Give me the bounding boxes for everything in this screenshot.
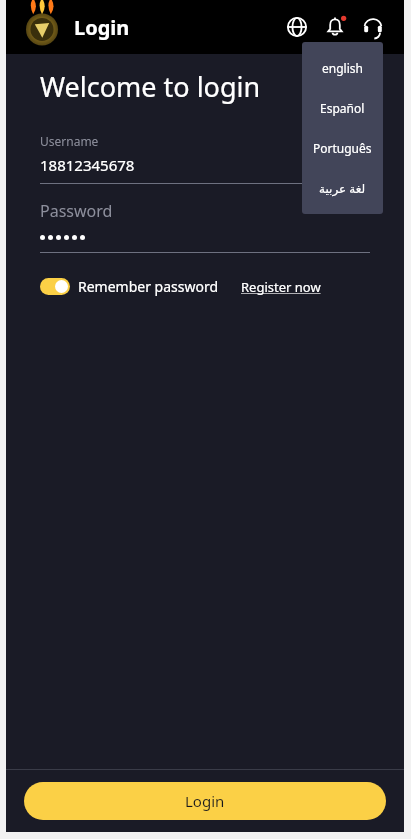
staticText: Welcome to login [40, 68, 261, 105]
staticText: Register now [241, 278, 321, 296]
staticText: Login [185, 791, 225, 811]
button[interactable]: Notifications [320, 12, 350, 42]
button[interactable]: Remember password [40, 277, 219, 296]
button[interactable]: لغة عربية [302, 168, 383, 208]
staticText: Login [74, 14, 130, 41]
staticText: لغة عربية [319, 180, 366, 196]
staticText: english [322, 60, 363, 76]
button[interactable]: Login [24, 782, 386, 820]
staticText: Español [320, 100, 365, 116]
button[interactable]: Language [282, 12, 312, 42]
button[interactable]: Español [302, 88, 383, 128]
button[interactable]: Support [358, 12, 388, 42]
staticText: Português [313, 140, 372, 156]
staticText: 18812345678 [40, 155, 135, 175]
button[interactable]: english [302, 48, 383, 88]
button[interactable]: Português [302, 128, 383, 168]
staticText: Password [40, 200, 113, 222]
staticText: Username [40, 133, 99, 149]
button[interactable]: Register now [241, 278, 321, 296]
staticText: Remember password [78, 277, 219, 296]
